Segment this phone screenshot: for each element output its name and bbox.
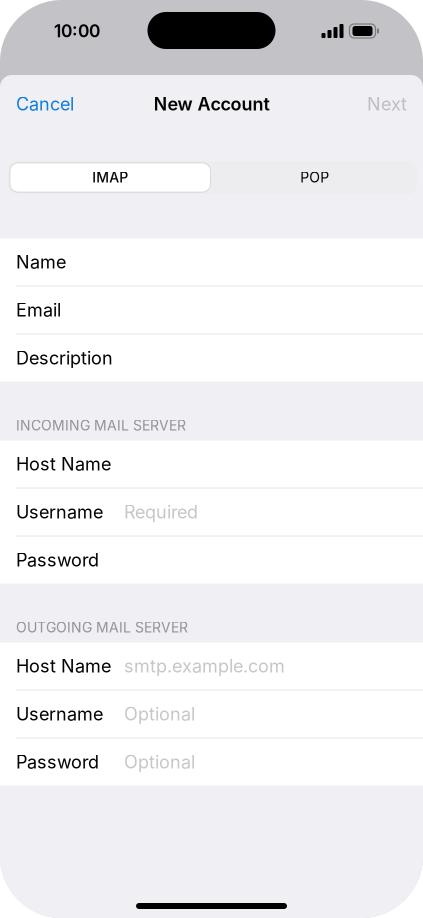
- staticText: Next: [367, 93, 407, 115]
- button[interactable]: Next: [357, 82, 423, 126]
- button[interactable]: Host Name: [0, 440, 423, 487]
- staticText: Email: [16, 299, 61, 321]
- button[interactable]: Name: [0, 238, 423, 285]
- button[interactable]: Description: [0, 334, 423, 381]
- staticText: Required: [124, 501, 198, 523]
- staticText: POP: [300, 169, 329, 186]
- staticText: Description: [16, 347, 113, 369]
- staticText: Optional: [124, 751, 195, 773]
- staticText: Username: [16, 703, 103, 725]
- button[interactable]: Cancel: [0, 82, 84, 126]
- button[interactable]: Password: [0, 738, 423, 785]
- button[interactable]: POP: [212, 161, 417, 194]
- staticText: New Account: [153, 93, 269, 115]
- staticText: 10:00: [54, 20, 100, 41]
- staticText: Host Name: [16, 453, 111, 475]
- staticText: Host Name: [16, 655, 111, 677]
- staticText: Password: [16, 549, 99, 571]
- staticText: Optional: [124, 703, 195, 725]
- staticText: IMAP: [92, 169, 128, 186]
- button[interactable]: IMAP: [8, 161, 212, 194]
- button[interactable]: Email: [0, 286, 423, 333]
- button[interactable]: Password: [0, 536, 423, 583]
- staticText: Username: [16, 501, 103, 523]
- staticText: INCOMING MAIL SERVER: [16, 417, 186, 434]
- button[interactable]: Username: [0, 488, 423, 535]
- staticText: Cancel: [16, 93, 74, 115]
- button[interactable]: Host Name: [0, 642, 423, 689]
- button[interactable]: Username: [0, 690, 423, 737]
- staticText: Password: [16, 751, 99, 773]
- staticText: OUTGOING MAIL SERVER: [16, 619, 188, 636]
- staticText: Name: [16, 251, 66, 273]
- staticText: smtp.example.com: [124, 655, 285, 677]
